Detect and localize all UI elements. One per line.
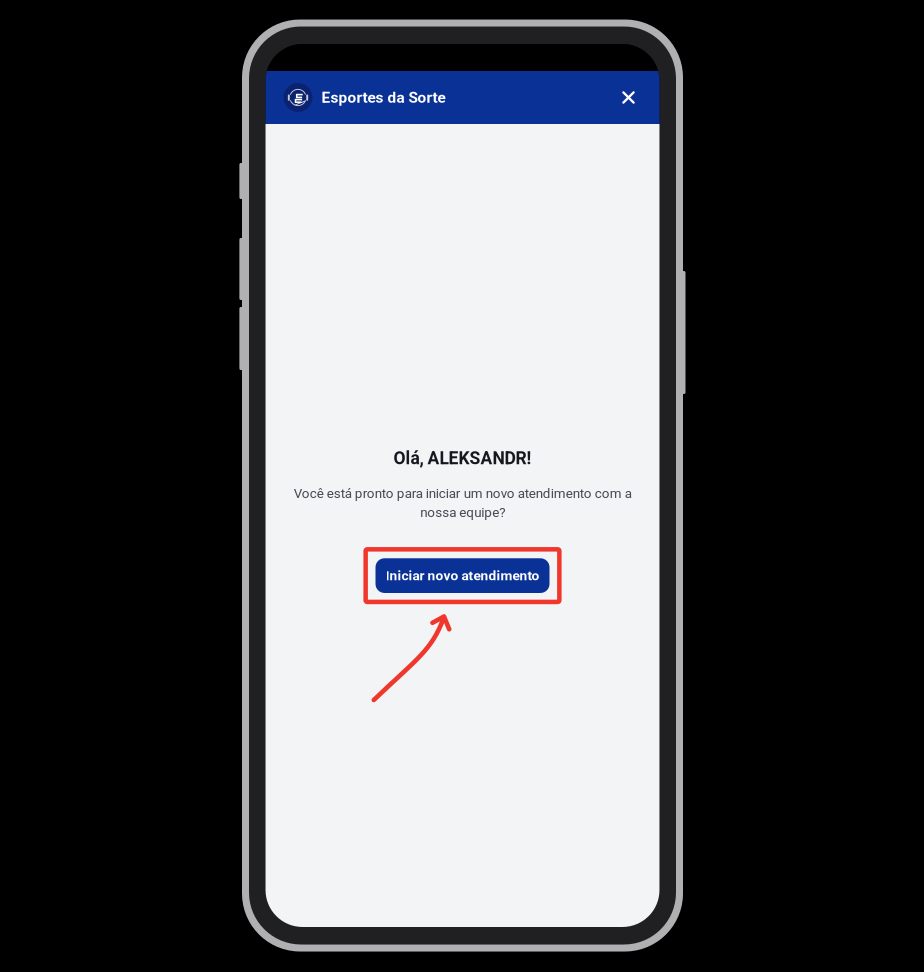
staticText: Esportes da Sorte [321,88,445,106]
staticText: Iniciar novo atendimento [385,568,539,584]
staticText: Olá, ALEKSANDR! [393,448,531,468]
staticText: Você está pronto para iniciar um novo at… [293,485,631,520]
button[interactable]: Esportes da Sorte [265,71,445,124]
button[interactable]: Fechar [606,71,659,124]
button[interactable]: Iniciar novo atendimento [375,558,549,593]
